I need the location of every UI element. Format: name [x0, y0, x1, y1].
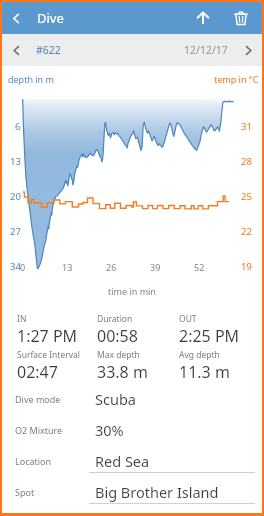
button[interactable]: Dive mode: [2, 383, 262, 414]
staticText: time in min: [108, 285, 156, 297]
staticText: 33.8 m: [97, 361, 148, 383]
staticText: Red Sea: [95, 451, 150, 471]
button[interactable]: Back: [3, 5, 29, 31]
staticText: 13: [62, 261, 73, 273]
staticText: OUT: [179, 313, 197, 325]
button[interactable]: Spot: [2, 476, 262, 507]
button[interactable]: Upload: [187, 2, 219, 34]
staticText: 20: [10, 190, 21, 203]
staticText: IN: [17, 313, 27, 325]
staticText: 22: [241, 225, 252, 238]
staticText: 13: [10, 155, 21, 168]
staticText: 25: [241, 190, 252, 203]
staticText: 31: [241, 120, 252, 133]
staticText: 2:25 PM: [179, 325, 240, 347]
staticText: O2 Mixture: [15, 424, 63, 436]
button[interactable]: Previous dive: [2, 36, 30, 64]
staticText: 34: [10, 260, 21, 273]
staticText: 1:27 PM: [17, 325, 78, 347]
staticText: 27: [10, 225, 21, 238]
button[interactable]: Delete: [225, 2, 257, 34]
staticText: 02:47: [17, 361, 58, 383]
staticText: Duration: [97, 313, 133, 325]
staticText: 00:58: [97, 325, 138, 347]
button[interactable]: Location: [2, 445, 262, 476]
staticText: Dive: [37, 9, 64, 27]
staticText: 11.3 m: [179, 361, 230, 383]
staticText: Dive mode: [15, 393, 61, 405]
staticText: Big Brother Island: [95, 482, 219, 502]
staticText: Spot: [15, 486, 35, 498]
staticText: 52: [194, 261, 205, 273]
staticText: 30%: [95, 420, 124, 440]
button[interactable]: Next dive: [234, 36, 262, 64]
staticText: 0: [20, 261, 26, 273]
staticText: 26: [106, 261, 117, 273]
staticText: Scuba: [95, 389, 136, 409]
button[interactable]: O2 Mixture: [2, 414, 262, 445]
staticText: 28: [241, 155, 252, 168]
staticText: 39: [150, 261, 161, 273]
staticText: depth in m: [8, 73, 54, 85]
staticText: #622: [36, 43, 61, 57]
staticText: 12/12/17: [184, 43, 228, 57]
staticText: Surface Interval: [17, 349, 80, 361]
staticText: Avg depth: [179, 349, 220, 361]
staticText: Max depth: [97, 349, 140, 361]
staticText: temp in °C: [214, 73, 259, 85]
staticText: 6: [15, 120, 21, 133]
staticText: Location: [15, 455, 52, 467]
staticText: 19: [241, 260, 252, 273]
